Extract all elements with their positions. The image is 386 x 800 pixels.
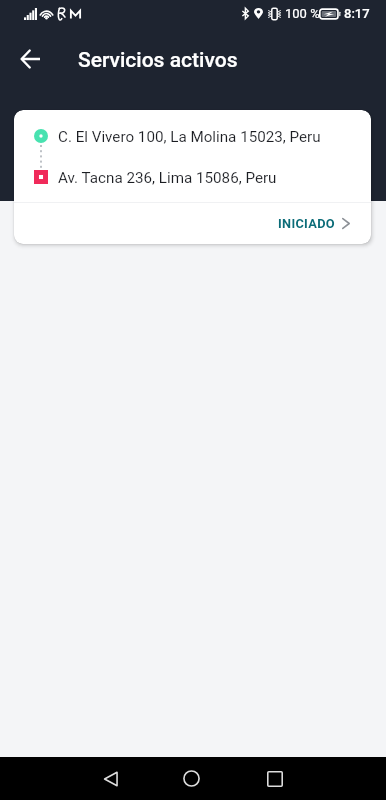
- button[interactable]: Recent apps: [250, 757, 300, 800]
- staticText: C. El Vivero 100, La Molina 15023, Peru: [58, 128, 321, 146]
- button[interactable]: INICIADO: [14, 203, 371, 244]
- staticText: Servicios activos: [78, 48, 238, 73]
- staticText: 100 %: [285, 6, 320, 21]
- staticText: 8:17: [344, 6, 370, 21]
- button[interactable]: Home: [166, 757, 216, 800]
- staticText: INICIADO: [278, 216, 335, 231]
- button[interactable]: Back: [85, 757, 135, 800]
- button[interactable]: C. El Vivero 100, La Molina 15023, Peru: [14, 110, 371, 244]
- staticText: Av. Tacna 236, Lima 15086, Peru: [58, 169, 277, 187]
- button[interactable]: Back: [8, 37, 52, 81]
